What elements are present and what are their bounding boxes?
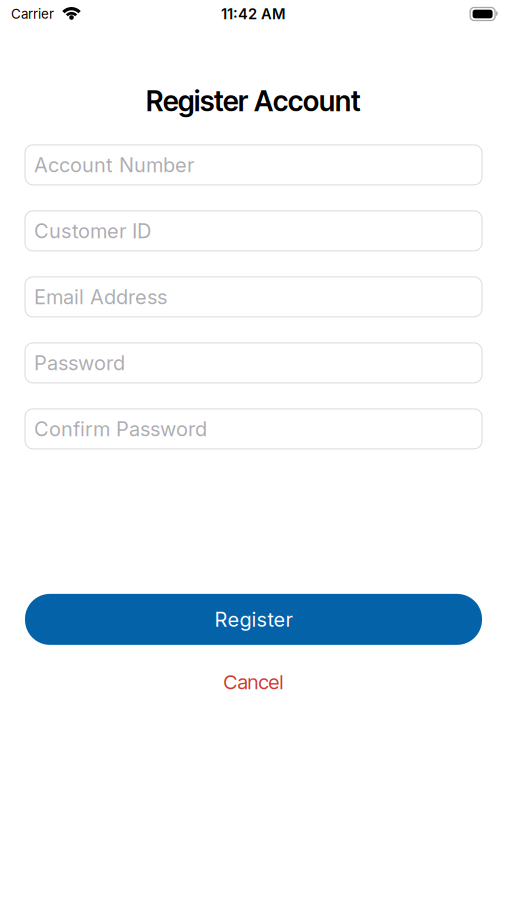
staticText: Customer ID bbox=[34, 219, 151, 243]
staticText: Confirm Password bbox=[34, 417, 207, 441]
staticText: 11:42 AM bbox=[221, 5, 286, 23]
staticText: Password bbox=[34, 351, 125, 375]
staticText: Cancel bbox=[223, 670, 283, 694]
staticText: Register Account bbox=[146, 84, 361, 118]
staticText: Email Address bbox=[34, 285, 167, 309]
staticText: Carrier bbox=[11, 6, 54, 22]
staticText: Account Number bbox=[34, 153, 194, 177]
staticText: Register bbox=[214, 608, 292, 631]
